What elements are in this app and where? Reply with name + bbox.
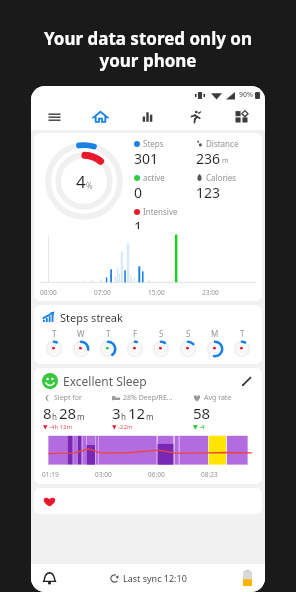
staticText: 1 (134, 217, 143, 229)
staticText: ▼ -4h 12m (43, 423, 73, 431)
button[interactable]: Home (77, 102, 124, 130)
button[interactable]: F (125, 328, 145, 359)
button[interactable]: T (44, 328, 64, 359)
staticText: 06:00 (148, 470, 201, 479)
staticText: 3 (112, 403, 121, 423)
staticText: Steps streak (60, 310, 123, 325)
staticText: 0 (134, 183, 143, 202)
staticText: Slept for (54, 393, 82, 403)
staticText: m (146, 411, 154, 422)
staticText: Last sync 12:10 (123, 572, 187, 584)
staticText: 236 (196, 149, 221, 168)
staticText: % (86, 180, 93, 191)
staticText: M (211, 328, 219, 339)
staticText: Excellent Sleep (63, 373, 147, 389)
button[interactable]: More (218, 102, 265, 130)
staticText: 28% Deep/RE... (123, 393, 173, 403)
staticText: m (77, 411, 85, 422)
button[interactable]: T (98, 328, 118, 359)
button[interactable]: T (232, 328, 252, 359)
staticText: Avg rate (204, 393, 232, 403)
staticText: 08:23 (201, 470, 254, 479)
staticText: 00:00 (40, 288, 94, 297)
staticText: 4 (76, 170, 86, 193)
button[interactable]: S (178, 328, 198, 359)
staticText: 90% (239, 90, 253, 100)
staticText: 8 (43, 403, 52, 423)
button[interactable]: Excellent Sleep (34, 368, 262, 484)
staticText: 15:00 (148, 288, 202, 297)
staticText: h (52, 411, 57, 422)
staticText: W (77, 328, 85, 339)
staticText: Your data stored only on your phone (10, 27, 286, 72)
button[interactable]: Menu (31, 102, 77, 130)
staticText: Distance (206, 138, 239, 149)
staticText: 23:00 (202, 288, 256, 297)
button[interactable]: Alarms (31, 564, 67, 592)
staticText: T (240, 328, 245, 339)
staticText: 01:19 (42, 470, 95, 479)
staticText: T (106, 328, 111, 339)
staticText: 07:00 (94, 288, 148, 297)
staticText: Calories (206, 172, 237, 183)
button[interactable]: Activity (171, 102, 218, 130)
staticText: 03:00 (95, 470, 148, 479)
staticText: F (133, 328, 138, 339)
staticText: ▼ -22m (112, 423, 133, 431)
button[interactable]: Last sync 12:10 (67, 564, 229, 592)
button[interactable]: Statistics (124, 102, 171, 130)
button[interactable] (34, 488, 262, 514)
staticText: h (121, 411, 126, 422)
staticText: active (143, 172, 165, 183)
staticText: 28 (59, 403, 77, 423)
button[interactable]: Steps streak (34, 305, 262, 364)
staticText: S (159, 328, 164, 339)
staticText: 301 (134, 149, 159, 168)
staticText: S (186, 328, 191, 339)
button[interactable]: M (205, 328, 225, 359)
staticText: Steps (143, 138, 164, 149)
staticText: 12 (128, 403, 146, 423)
staticText: m (222, 156, 229, 166)
button[interactable]: W (71, 328, 91, 359)
button[interactable]: Battery (229, 564, 265, 592)
button[interactable]: S (151, 328, 171, 359)
button[interactable]: 4 (34, 133, 262, 301)
staticText: 123 (196, 183, 221, 202)
staticText: T (52, 328, 57, 339)
staticText: 58 (193, 403, 211, 423)
staticText: ▼ -4 (193, 423, 205, 431)
staticText: Intensive (143, 206, 178, 217)
button[interactable]: Edit (238, 373, 254, 389)
